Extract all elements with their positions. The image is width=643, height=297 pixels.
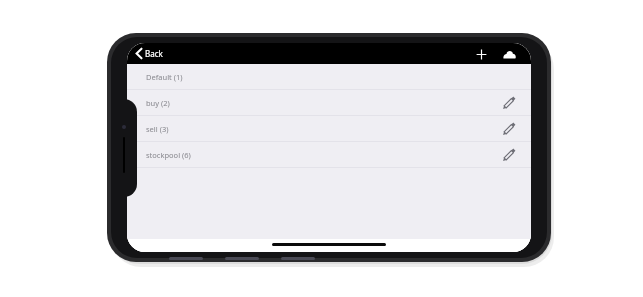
button[interactable]: stockpool (6) [127, 142, 531, 167]
button[interactable]: Add [473, 46, 489, 62]
staticText: stockpool (6) [146, 150, 499, 160]
button[interactable]: Back [132, 46, 167, 61]
button[interactable]: Default (1) [127, 64, 531, 89]
staticText: Default (1) [146, 72, 517, 82]
button[interactable]: Cloud sync [501, 46, 517, 62]
staticText: buy (2) [146, 98, 499, 108]
staticText: sell (3) [146, 124, 499, 134]
button[interactable]: Edit stockpool (6) [499, 146, 517, 164]
button[interactable]: buy (2) [127, 90, 531, 115]
staticText: Back [145, 48, 163, 59]
button[interactable]: sell (3) [127, 116, 531, 141]
button[interactable]: Edit sell (3) [499, 120, 517, 138]
button[interactable]: Edit buy (2) [499, 94, 517, 112]
